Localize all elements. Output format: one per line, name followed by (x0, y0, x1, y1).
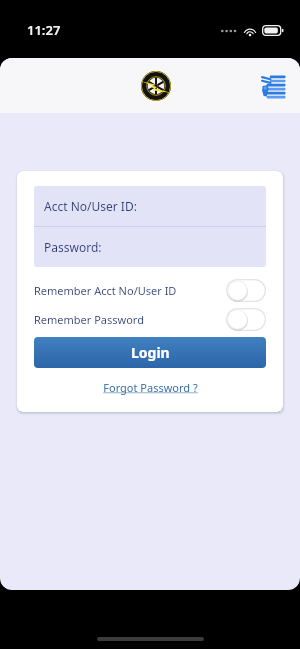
staticText: Password: (44, 239, 102, 255)
button[interactable]: Remember Password (34, 308, 266, 331)
staticText: Acct No/User ID: (44, 198, 137, 214)
button[interactable]: Forgot Password ? (99, 378, 202, 397)
staticText: Login (131, 343, 170, 362)
button[interactable]: Register (256, 69, 290, 103)
button[interactable]: Password: (34, 227, 266, 267)
button[interactable]: Acct No/User ID: (34, 186, 266, 226)
staticText: Remember Password (34, 312, 226, 327)
staticText: Forgot Password ? (103, 380, 198, 395)
staticText: Remember Acct No/User ID (34, 283, 226, 298)
button[interactable]: Remember Acct No/User ID (34, 279, 266, 302)
button[interactable]: Login (34, 337, 266, 368)
staticText: 11:27 (27, 21, 61, 39)
